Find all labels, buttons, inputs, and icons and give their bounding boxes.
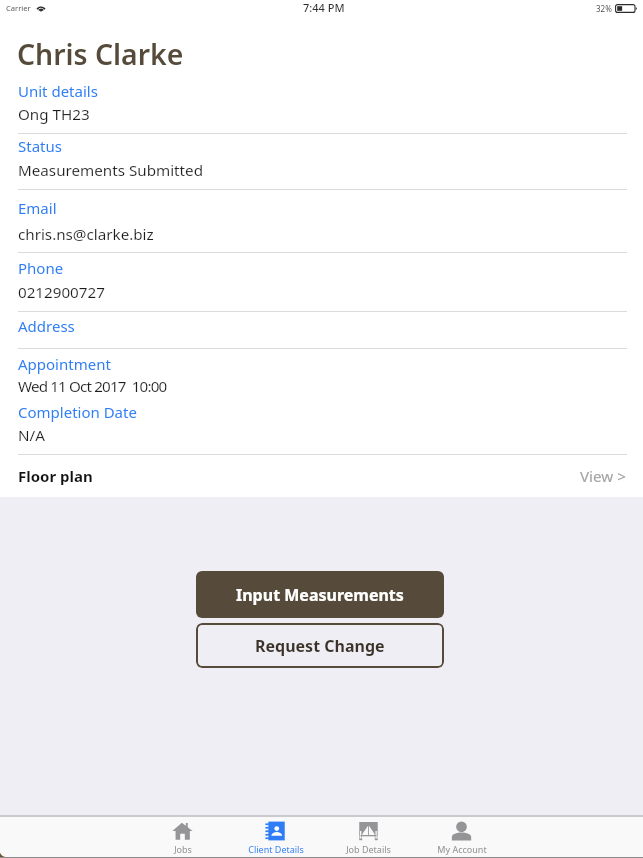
staticText: Chris Clarke [17,35,184,74]
staticText: Status [18,136,62,156]
staticText: 0212900727 [18,282,105,303]
staticText: Unit details [18,81,98,101]
staticText: N/A [18,425,45,446]
staticText: Job Details [346,843,391,855]
staticText: Address [18,316,75,336]
staticText: Appointment [18,354,111,374]
button[interactable]: My Account [415,817,508,857]
staticText: Jobs [174,843,192,855]
button[interactable]: Floor plan [0,455,643,497]
staticText: Completion Date [18,402,137,422]
button[interactable]: Input Measurements [196,571,444,618]
staticText: View > [580,466,626,487]
staticText: 32% [596,3,612,14]
button[interactable]: Client Details [229,817,322,857]
button[interactable]: Request Change [196,623,444,668]
button[interactable]: Jobs [136,817,229,857]
staticText: Input Measurements [236,584,404,606]
staticText: Wed 11 Oct 2017 10:00 [18,376,167,397]
button[interactable]: Job Details [322,817,415,857]
staticText: Ong TH23 [18,104,90,125]
staticText: Client Details [248,843,304,855]
staticText: 7:44 PM [303,0,345,15]
staticText: chris.ns@clarke.biz [18,224,154,245]
staticText: Floor plan [18,466,93,486]
staticText: Measurements Submitted [18,160,203,181]
staticText: Request Change [255,635,385,657]
staticText: Carrier [6,3,31,13]
staticText: My Account [437,843,487,855]
staticText: Email [18,198,57,218]
staticText: Phone [18,258,64,278]
